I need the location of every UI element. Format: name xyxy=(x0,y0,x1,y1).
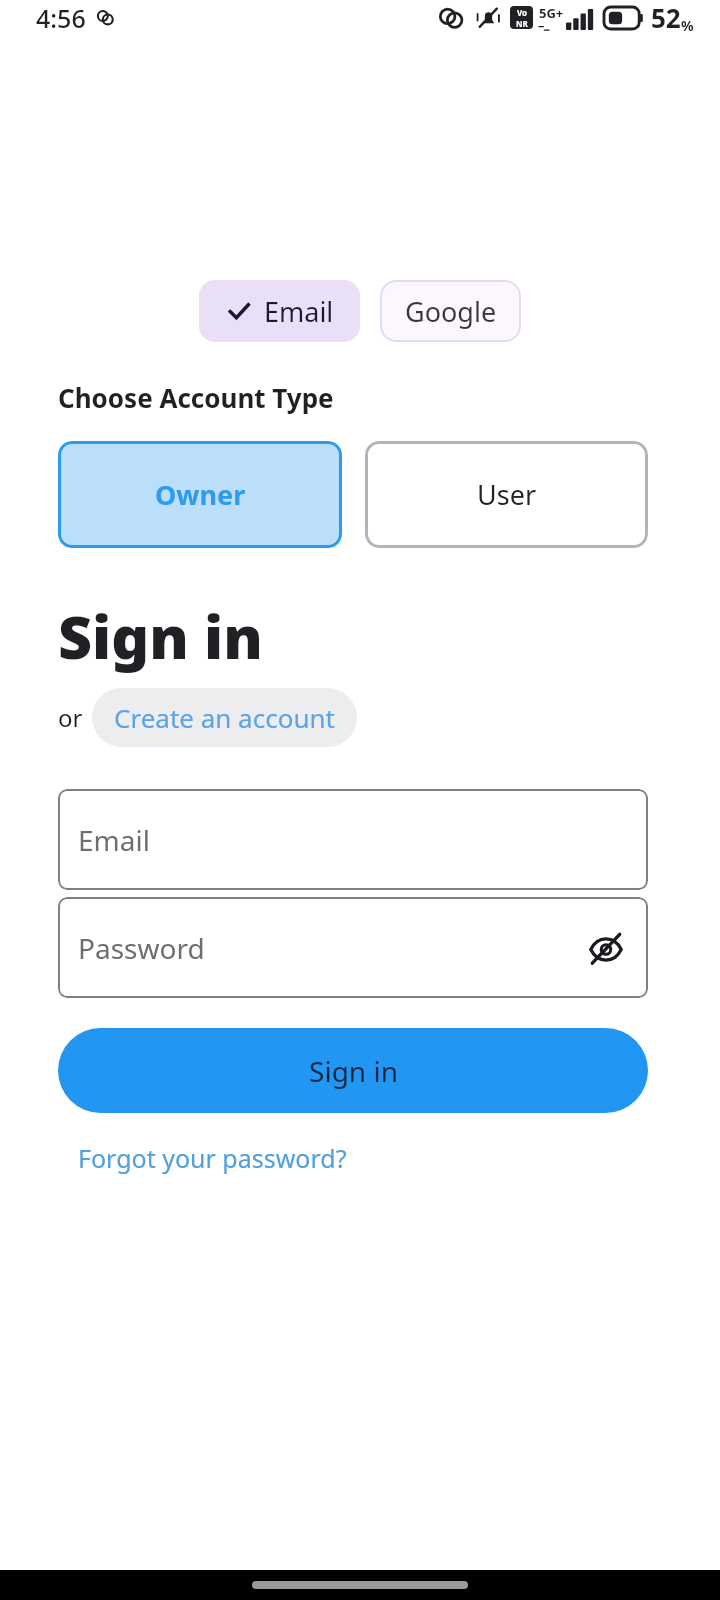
staticText: Forgot your password? xyxy=(78,1141,347,1175)
staticText: 52 xyxy=(651,0,681,35)
button[interactable]: User xyxy=(365,441,648,548)
button[interactable]: Sign in xyxy=(58,1028,648,1113)
staticText: Email xyxy=(78,821,150,859)
staticText: Sign in xyxy=(309,1052,398,1090)
staticText: or xyxy=(58,701,83,734)
staticText: NR xyxy=(516,18,528,29)
staticText: Create an account xyxy=(114,700,335,735)
button[interactable]: Google xyxy=(380,280,521,342)
button[interactable]: Email xyxy=(58,789,648,890)
staticText: 4:56 xyxy=(36,1,86,35)
staticText: % xyxy=(681,16,694,35)
staticText: Email xyxy=(264,293,334,330)
staticText: User xyxy=(477,476,537,513)
button[interactable]: Email xyxy=(199,280,360,342)
staticText: Vo xyxy=(517,7,528,18)
button[interactable]: Owner xyxy=(58,441,342,548)
staticText: Sign in xyxy=(58,596,263,676)
button[interactable]: Create an account xyxy=(92,688,357,747)
staticText: 5G+ xyxy=(539,4,564,22)
staticText: Password xyxy=(78,929,205,967)
staticText: Owner xyxy=(155,476,246,513)
button[interactable]: Password xyxy=(58,897,648,998)
button[interactable]: Show password xyxy=(584,926,628,970)
button[interactable]: Forgot your password? xyxy=(78,1141,347,1175)
staticText: Choose Account Type xyxy=(58,380,334,415)
staticText: Google xyxy=(405,293,497,330)
